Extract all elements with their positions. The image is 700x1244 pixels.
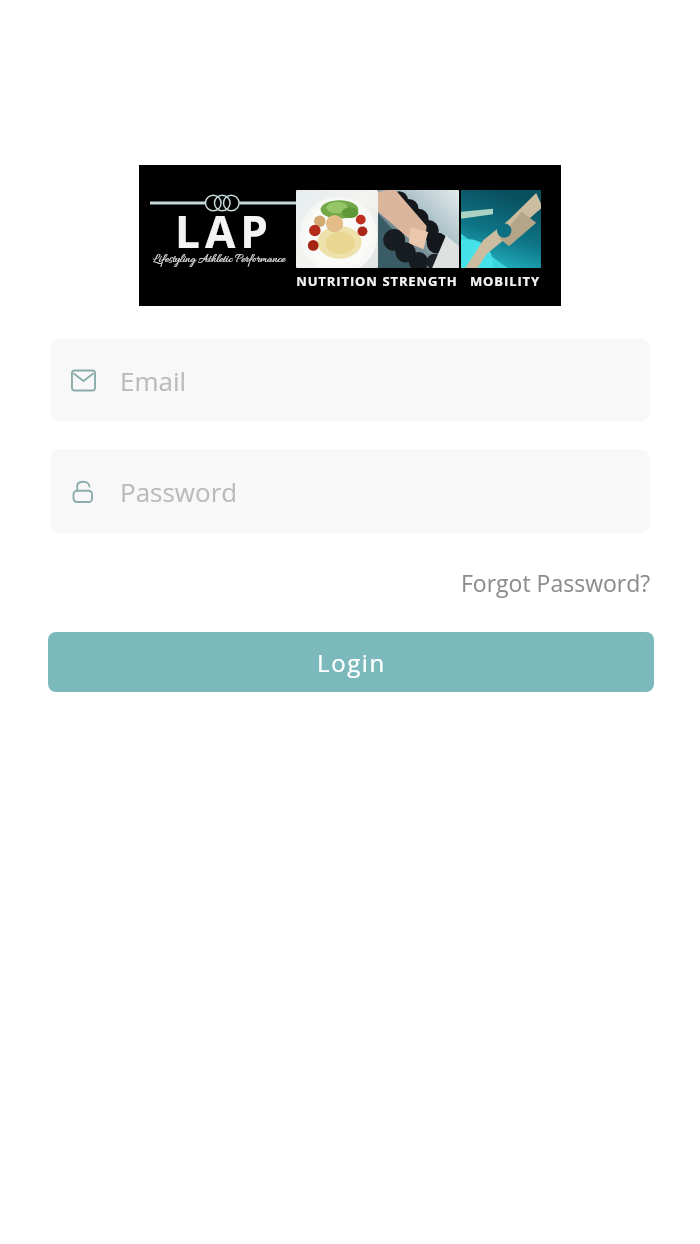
button[interactable]: Forgot Password? — [450, 559, 662, 605]
staticText: Email — [120, 363, 187, 398]
staticText: MOBILITY — [466, 272, 544, 290]
other: Password — [71, 479, 96, 504]
staticText: Password — [120, 474, 238, 509]
staticText: LAP — [147, 201, 301, 261]
button[interactable]: Password — [50, 449, 650, 533]
staticText: NUTRITION — [294, 272, 380, 290]
button[interactable]: Email — [50, 338, 650, 422]
button[interactable]: Login — [48, 632, 654, 692]
staticText: Login — [317, 646, 386, 679]
other: Email — [71, 368, 96, 393]
staticText: Forgot Password? — [461, 567, 651, 598]
staticText: STRENGTH — [380, 272, 460, 290]
staticText: Lifestyling Athletic Performance — [143, 252, 295, 267]
